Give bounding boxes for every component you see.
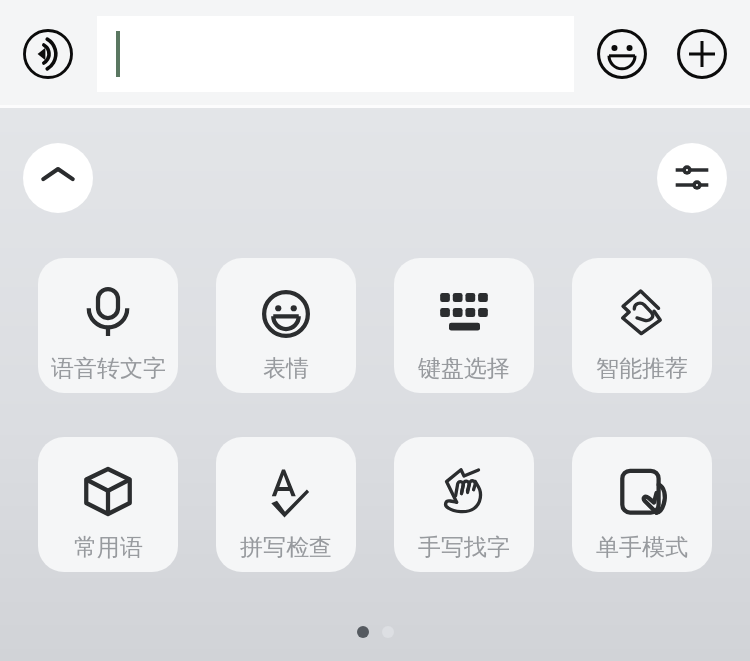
button[interactable] [97,16,574,92]
button[interactable]: Add [676,28,728,80]
button[interactable]: 单手模式 [572,437,712,572]
staticText: 键盘选择 [418,354,510,383]
button[interactable]: Keyboard settings [657,143,727,213]
staticText: 单手模式 [596,533,688,562]
button[interactable]: 表情 [216,258,356,393]
staticText: 手写找字 [418,533,510,562]
staticText: 语音转文字 [51,354,166,383]
staticText: 拼写检查 [240,533,332,562]
button[interactable]: 常用语 [38,437,178,572]
button[interactable]: 键盘选择 [394,258,534,393]
button[interactable]: Collapse panel [23,143,93,213]
button[interactable]: 拼写检查 [216,437,356,572]
staticText: 智能推荐 [596,354,688,383]
button[interactable]: Voice input [22,28,74,80]
button[interactable]: 语音转文字 [38,258,178,393]
button[interactable]: 手写找字 [394,437,534,572]
button[interactable]: 智能推荐 [572,258,712,393]
staticText: 表情 [263,354,309,383]
button[interactable]: Emoji [596,28,648,80]
staticText: 常用语 [74,533,143,562]
